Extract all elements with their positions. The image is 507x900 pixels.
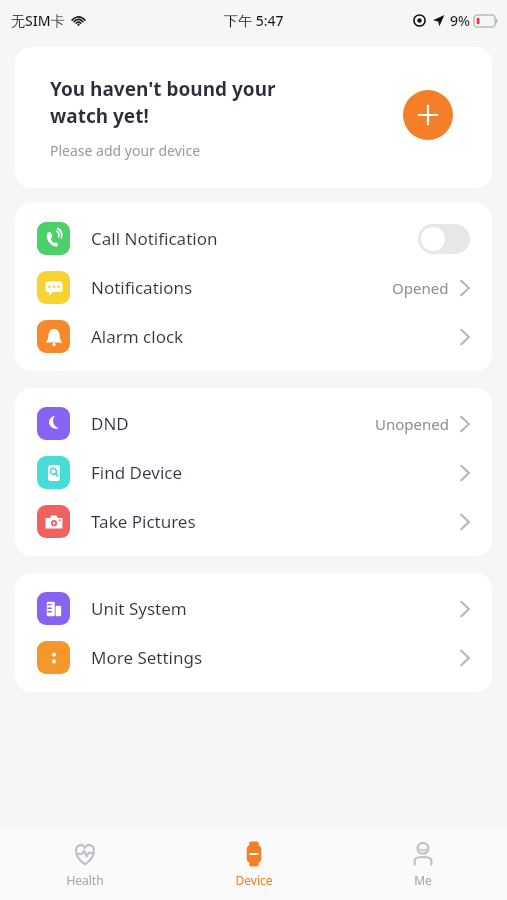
button[interactable]: Take Pictures [15,497,492,546]
staticText: Find Device [91,461,183,484]
staticText: DND [91,412,129,435]
button[interactable]: Add device [403,90,453,140]
button[interactable]: Device [169,828,338,900]
staticText: Take Pictures [91,510,196,533]
staticText: Opened [392,278,449,298]
staticText: Me [414,872,432,888]
button[interactable]: Call Notification [15,214,492,263]
staticText: 9% [450,11,470,30]
staticText: Device [235,872,273,888]
button[interactable]: Unit System [15,584,492,633]
button[interactable]: Alarm clock [15,312,492,361]
button[interactable]: Call Notification toggle [418,224,470,254]
button[interactable]: Me [338,828,507,900]
staticText: 下午 5:47 [224,11,284,30]
staticText: Please add your device [50,141,201,160]
staticText: Unopened [375,414,449,434]
button[interactable]: More Settings [15,633,492,682]
staticText: Alarm clock [91,325,184,348]
staticText: Unit System [91,597,187,620]
staticText: Health [66,872,104,888]
staticText: You haven't bound your watch yet! [50,76,276,129]
button[interactable]: Health [0,828,169,900]
button[interactable]: Find Device [15,448,492,497]
staticText: Call Notification [91,227,218,250]
staticText: Notifications [91,276,193,299]
staticText: 无SIM卡 [11,11,65,30]
staticText: More Settings [91,646,203,669]
button[interactable]: Notifications [15,263,492,312]
button[interactable]: DND [15,399,492,448]
